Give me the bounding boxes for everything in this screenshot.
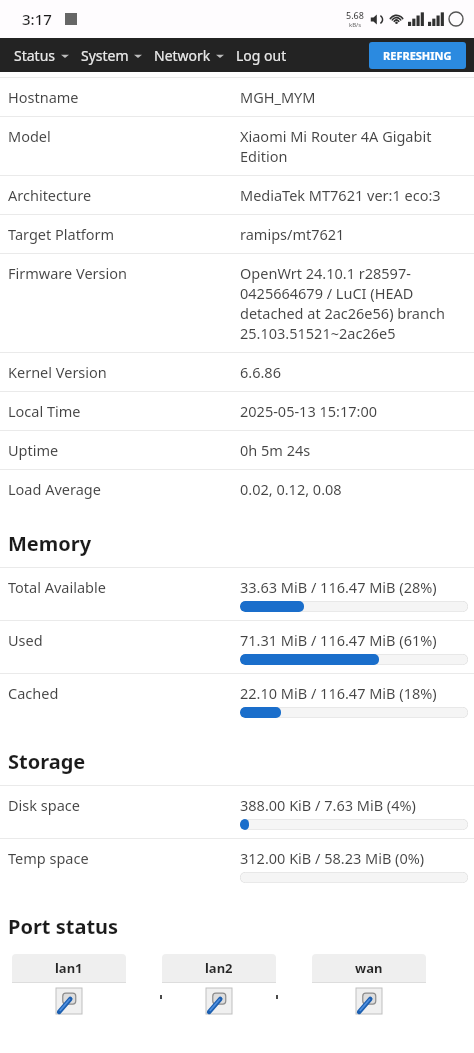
staticText: wan xyxy=(355,959,383,977)
staticText: System xyxy=(81,46,129,65)
staticText: 5.68 xyxy=(346,9,364,21)
staticText: REFRESHING xyxy=(383,48,452,63)
button[interactable]: Total Available xyxy=(0,568,474,620)
staticText: 2025-05-13 15:17:00 xyxy=(240,401,377,421)
staticText: Firmware Version xyxy=(8,263,240,283)
staticText: Uptime xyxy=(8,440,240,460)
button[interactable]: Model xyxy=(0,117,474,175)
staticText: Xiaomi Mi Router 4A Gigabit xyxy=(240,126,432,146)
button[interactable]: Used xyxy=(0,621,474,673)
button[interactable]: Kernel Version xyxy=(0,353,474,391)
button[interactable]: Firmware Version xyxy=(0,254,474,352)
staticText: kB/s xyxy=(349,21,362,29)
staticText: 22.10 MiB / 116.47 MiB (18%) xyxy=(240,683,437,703)
staticText: Status xyxy=(14,46,56,65)
staticText: MGH_MYM xyxy=(240,87,316,107)
button[interactable]: Cached xyxy=(0,674,474,726)
staticText: Log out xyxy=(236,46,287,65)
staticText: 388.00 KiB / 7.63 MiB (4%) xyxy=(240,795,416,815)
button[interactable]: lan2 xyxy=(162,954,276,1019)
staticText: Disk space xyxy=(8,795,240,815)
staticText: Model xyxy=(8,126,240,146)
staticText: Network xyxy=(154,46,211,65)
staticText: Hostname xyxy=(8,87,240,107)
staticText: 0425664679 / LuCI (HEAD xyxy=(240,283,414,303)
staticText: Temp space xyxy=(8,848,240,868)
other: Ethernet port xyxy=(206,988,232,1014)
staticText: lan2 xyxy=(205,959,233,977)
other: Ethernet port xyxy=(356,988,382,1014)
staticText: Edition xyxy=(240,146,288,166)
button[interactable]: wan xyxy=(312,954,426,1019)
staticText: 312.00 KiB / 58.23 MiB (0%) xyxy=(240,848,425,868)
staticText: 6.6.86 xyxy=(240,362,281,382)
button[interactable]: REFRESHING xyxy=(369,42,466,69)
staticText: Load Average xyxy=(8,479,240,499)
staticText: lan1 xyxy=(55,959,83,977)
button[interactable]: Temp space xyxy=(0,839,474,891)
button[interactable]: System xyxy=(75,42,148,69)
staticText: Total Available xyxy=(8,577,240,597)
button[interactable]: lan1 xyxy=(12,954,126,1019)
staticText: 0.02, 0.12, 0.08 xyxy=(240,479,342,499)
button[interactable]: Architecture xyxy=(0,176,474,214)
staticText: Storage xyxy=(8,748,86,775)
button[interactable]: Network xyxy=(148,42,230,69)
staticText: Memory xyxy=(8,530,92,557)
staticText: Cached xyxy=(8,683,240,703)
staticText: 33.63 MiB / 116.47 MiB (28%) xyxy=(240,577,437,597)
staticText: 25.103.51521~2ac26e5 xyxy=(240,323,396,343)
staticText: Kernel Version xyxy=(8,362,240,382)
button[interactable]: Status xyxy=(8,42,75,69)
staticText: Port status xyxy=(8,913,119,940)
button[interactable]: Hostname xyxy=(0,78,474,116)
button[interactable]: Load Average xyxy=(0,470,474,508)
staticText: Target Platform xyxy=(8,224,240,244)
staticText: 3:17 xyxy=(22,9,52,29)
staticText: Used xyxy=(8,630,240,650)
staticText: 0h 5m 24s xyxy=(240,440,311,460)
other: Ethernet port xyxy=(56,988,82,1014)
staticText: MediaTek MT7621 ver:1 eco:3 xyxy=(240,185,441,205)
button[interactable]: Log out xyxy=(230,42,293,69)
staticText: detached at 2ac26e56) branch xyxy=(240,303,445,323)
button[interactable]: Local Time xyxy=(0,392,474,430)
button[interactable]: Target Platform xyxy=(0,215,474,253)
staticText: OpenWrt 24.10.1 r28597- xyxy=(240,263,411,283)
staticText: Architecture xyxy=(8,185,240,205)
button[interactable]: Disk space xyxy=(0,786,474,838)
staticText: ramips/mt7621 xyxy=(240,224,345,244)
staticText: Local Time xyxy=(8,401,240,421)
staticText: 71.31 MiB / 116.47 MiB (61%) xyxy=(240,630,437,650)
button[interactable]: Uptime xyxy=(0,431,474,469)
